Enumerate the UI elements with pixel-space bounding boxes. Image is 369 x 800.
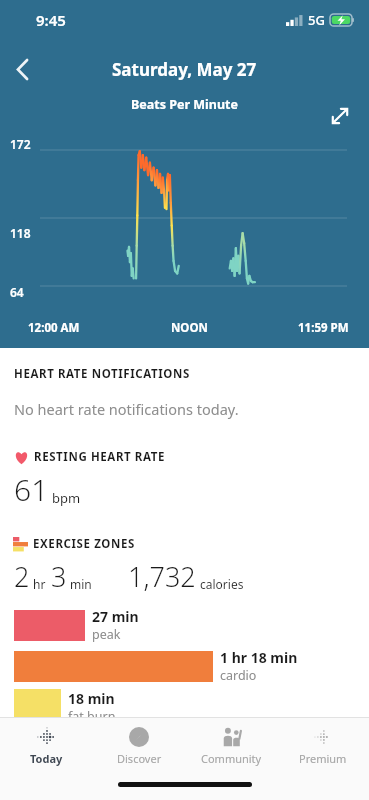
staticText: Beats Per Minute	[131, 96, 238, 113]
staticText: calories	[200, 576, 244, 592]
button[interactable]: Back	[4, 52, 40, 86]
button[interactable]: Today	[0, 718, 93, 774]
staticText: 27 min	[92, 607, 139, 626]
button[interactable]: 27 min	[0, 607, 369, 643]
staticText: 64	[10, 284, 24, 300]
staticText: 18 min	[68, 689, 115, 708]
staticText: peak	[92, 626, 121, 643]
staticText: fat burn	[68, 708, 116, 717]
staticText: 5G	[308, 11, 325, 29]
staticText: hr	[33, 576, 46, 592]
staticText: min	[70, 576, 92, 592]
staticText: 3	[51, 558, 67, 595]
staticText: 11:59 PM	[298, 320, 349, 336]
staticText: RESTING HEART RATE	[34, 449, 166, 465]
staticText: 1,732	[128, 558, 196, 595]
staticText: 61	[14, 469, 49, 510]
staticText: cardio	[220, 667, 257, 684]
staticText: HEART RATE NOTIFICATIONS	[14, 366, 190, 382]
button[interactable]: EXERCISE ZONES	[0, 536, 369, 552]
button[interactable]: Discover	[93, 718, 185, 774]
staticText: 12:00 AM	[28, 320, 80, 336]
staticText: 2	[14, 558, 30, 595]
button[interactable]: Expand chart	[323, 99, 357, 133]
button[interactable]: RESTING HEART RATE	[0, 449, 369, 465]
staticText: NOON	[171, 320, 208, 336]
staticText: No heart rate notifications today.	[14, 399, 239, 419]
staticText: Discover	[117, 751, 162, 766]
button[interactable]: 18 min	[0, 689, 369, 717]
staticText: 9:45	[36, 10, 66, 30]
button[interactable]: Community	[185, 718, 277, 774]
staticText: Community	[201, 751, 262, 766]
staticText: Today	[30, 751, 63, 766]
staticText: 172	[10, 136, 31, 152]
button[interactable]: 1 hr 18 min	[0, 648, 369, 684]
staticText: bpm	[52, 489, 81, 507]
button[interactable]: Premium	[277, 718, 369, 774]
staticText: EXERCISE ZONES	[33, 536, 135, 552]
staticText: 1 hr 18 min	[220, 648, 298, 667]
staticText: 118	[10, 225, 31, 241]
staticText: Saturday, May 27	[112, 58, 257, 81]
staticText: Premium	[299, 751, 347, 766]
